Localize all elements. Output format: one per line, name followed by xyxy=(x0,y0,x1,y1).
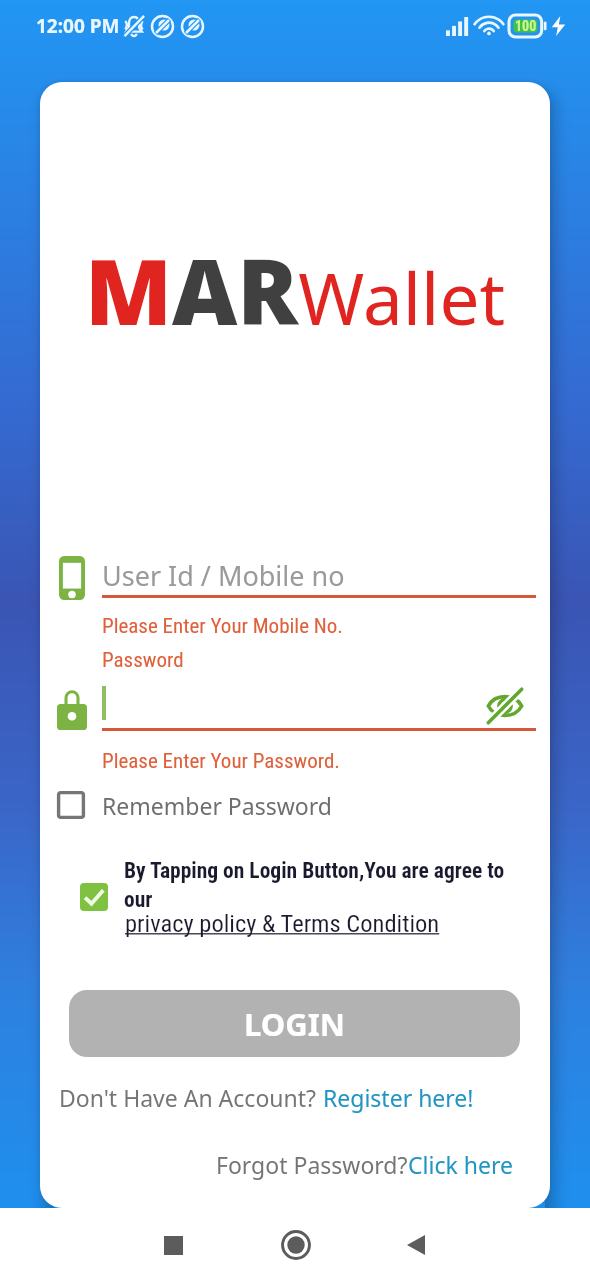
button[interactable]: Back xyxy=(388,1217,444,1273)
staticText: Password xyxy=(102,648,184,673)
staticText: 12:00 PM xyxy=(36,13,120,39)
staticText: User Id / Mobile no xyxy=(102,557,345,594)
button[interactable]: Click here xyxy=(408,1149,513,1180)
staticText: Forgot Password? xyxy=(216,1149,408,1180)
button[interactable]: privacy policy & Terms Condition xyxy=(125,909,440,938)
button[interactable]: Home xyxy=(268,1217,324,1273)
button[interactable]: LOGIN xyxy=(69,990,520,1057)
staticText: Don't Have An Account? xyxy=(59,1082,323,1113)
button[interactable]: Remember Password xyxy=(57,784,332,826)
button[interactable]: Register here! xyxy=(323,1082,474,1113)
staticText: Remember Password xyxy=(102,790,332,821)
staticText: MARWallet xyxy=(85,229,506,352)
button[interactable]: Recent apps xyxy=(145,1217,201,1273)
staticText: Please Enter Your Password. xyxy=(102,749,340,774)
staticText: 100 xyxy=(515,18,537,34)
staticText: LOGIN xyxy=(244,1003,345,1045)
staticText: By Tapping on Login Button,You are agree… xyxy=(124,858,505,912)
button[interactable]: Toggle password visibility xyxy=(481,682,529,730)
button[interactable]: Agree to terms checkbox xyxy=(80,883,108,911)
staticText: Please Enter Your Mobile No. xyxy=(102,614,343,639)
